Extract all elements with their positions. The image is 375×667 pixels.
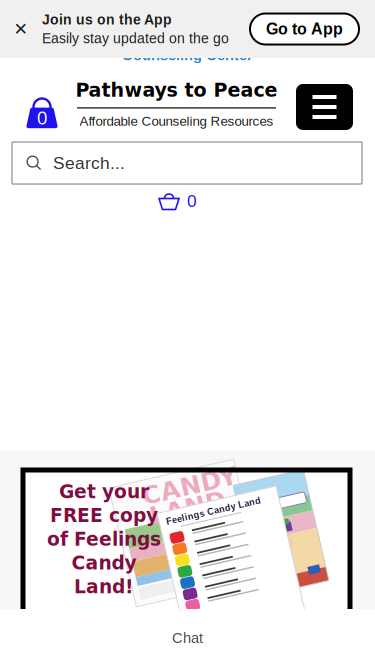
- staticText: Feelings Candy Land: [177, 503, 274, 513]
- staticText: Candy: [71, 552, 136, 574]
- staticText: Pathways to Peace: [75, 79, 277, 101]
- staticText: ✕: [13, 19, 28, 39]
- staticText: Easily stay updated on the go: [42, 30, 229, 46]
- staticText: 0: [37, 108, 47, 128]
- button[interactable]: Search...: [12, 142, 362, 184]
- staticText: Join us on the App: [42, 12, 172, 27]
- button[interactable]: Chat: [0, 609, 375, 667]
- button[interactable]: Get your FREE copy of Feelings Candy Lan…: [23, 470, 350, 622]
- staticText: Get your: [59, 481, 149, 503]
- staticText: Chat: [172, 630, 203, 646]
- button[interactable]: 0: [0, 187, 355, 215]
- button[interactable]: Dismiss banner: [0, 0, 42, 58]
- staticText: Search...: [53, 153, 125, 173]
- staticText: 0: [187, 191, 197, 211]
- staticText: Go to App: [266, 20, 343, 38]
- staticText: Affordable Counseling Resources: [79, 114, 273, 128]
- button[interactable]: Menu: [296, 84, 353, 130]
- staticText: Land!: [74, 576, 134, 598]
- staticText: FREE copy: [50, 505, 158, 526]
- button[interactable]: Go to App: [250, 13, 359, 44]
- staticText: Counseling Center: [122, 47, 253, 63]
- button[interactable]: Cart, 0 items: [18, 87, 66, 135]
- staticText: CANDY: [141, 471, 238, 500]
- staticText: LAND: [149, 493, 227, 522]
- staticText: of Feelings: [47, 528, 161, 550]
